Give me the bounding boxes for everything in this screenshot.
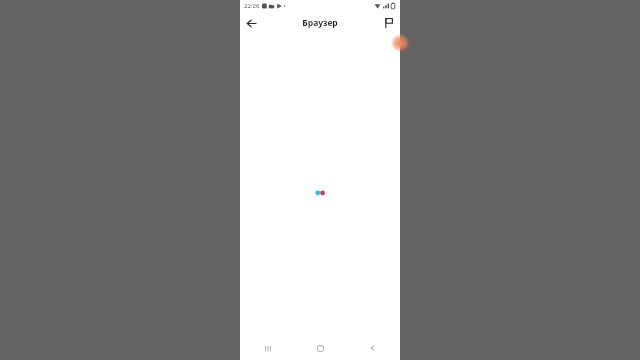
button[interactable]: Back	[240, 12, 262, 34]
staticText: 22:26	[244, 2, 260, 10]
button[interactable]: Back	[360, 336, 384, 360]
button[interactable]: Bookmark	[378, 12, 400, 34]
button[interactable]: Recent apps	[256, 336, 280, 360]
staticText: Браузер	[302, 17, 338, 29]
button[interactable]: Home	[308, 336, 332, 360]
